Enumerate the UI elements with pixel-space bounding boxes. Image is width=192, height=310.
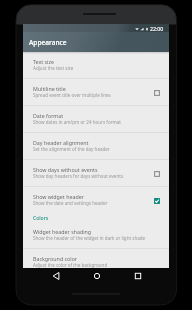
staticText: Show the header of the widget in dark or… <box>33 235 146 241</box>
button[interactable]: Show days without events <box>23 160 169 187</box>
staticText: Text size <box>33 58 54 65</box>
staticText: Day header alignment <box>33 139 89 146</box>
staticText: Show days without events <box>33 166 98 173</box>
staticText: Adjust the text size <box>33 65 74 71</box>
button[interactable]: Day header alignment <box>23 133 169 160</box>
staticText: Show day headers for days without events <box>33 173 124 179</box>
staticText: 22:00 <box>150 25 164 32</box>
button[interactable]: Show widget header <box>23 187 169 214</box>
button[interactable]: Background color <box>23 249 169 266</box>
button[interactable]: Date format <box>23 106 169 133</box>
button[interactable]: Back <box>48 268 63 283</box>
button[interactable]: Recents <box>130 268 145 283</box>
staticText: Show the date and settings header <box>33 200 108 206</box>
staticText: Multiline title <box>33 85 66 92</box>
staticText: Adjust the color of the background <box>33 262 108 268</box>
staticText: Widget header shading <box>33 228 92 235</box>
staticText: Background color <box>33 255 78 262</box>
staticText: Date format <box>33 112 64 119</box>
staticText: Appearance <box>29 38 67 47</box>
staticText: Show dates in am/pm or 24 hours format <box>33 119 121 125</box>
staticText: Set the alignment of the day header <box>33 146 110 152</box>
staticText: Spread event title over multiple lines <box>33 92 111 98</box>
staticText: Colors <box>33 215 49 222</box>
button[interactable]: Home <box>89 268 104 283</box>
staticText: Show widget header <box>33 193 84 200</box>
button[interactable]: Text size <box>23 52 169 79</box>
button[interactable]: Widget header shading <box>23 222 169 249</box>
button[interactable]: Multiline title <box>23 79 169 106</box>
